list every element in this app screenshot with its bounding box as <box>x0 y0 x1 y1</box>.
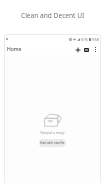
staticText: 61% <box>81 37 88 42</box>
staticText: 9:58 <box>92 37 99 42</box>
button[interactable]: Switch layout <box>82 44 91 55</box>
staticText: Notepad is empty <box>40 131 65 135</box>
button[interactable]: Start with new file <box>39 139 66 147</box>
staticText: Clean and Decent UI <box>21 11 85 20</box>
staticText: Start with new file <box>40 141 65 145</box>
staticText: Home <box>7 46 22 53</box>
button[interactable]: More options <box>91 44 100 55</box>
button[interactable]: Add <box>73 44 82 55</box>
